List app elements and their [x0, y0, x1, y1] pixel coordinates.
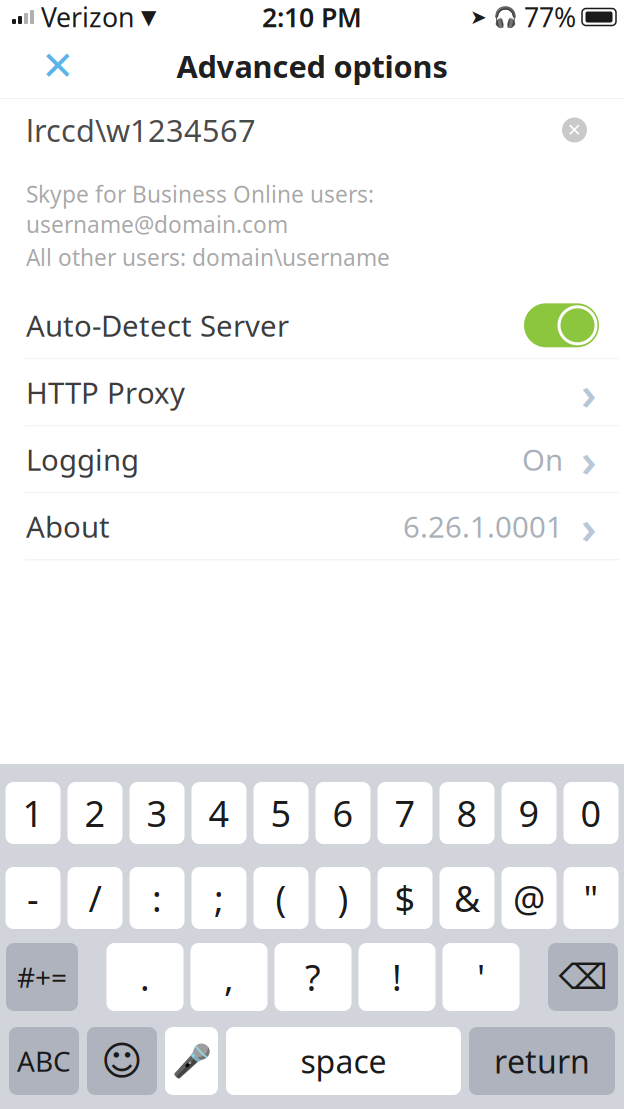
button[interactable]: return: [469, 1027, 615, 1095]
button[interactable]: lrccd\w1234567: [0, 99, 624, 161]
staticText: ?: [305, 953, 321, 1001]
button[interactable]: space: [226, 1027, 461, 1095]
button[interactable]: &: [439, 867, 494, 929]
staticText: ✕: [41, 43, 75, 89]
button[interactable]: 7: [377, 782, 432, 844]
button[interactable]: Emoji: [87, 1027, 157, 1095]
button[interactable]: :: [129, 867, 184, 929]
staticText: #+=: [17, 958, 67, 996]
staticText: About: [26, 507, 110, 546]
staticText: 7: [394, 789, 415, 837]
staticText: ": [583, 874, 598, 922]
button[interactable]: -: [5, 867, 60, 929]
button[interactable]: About: [0, 493, 624, 559]
button[interactable]: 5: [253, 782, 308, 844]
button[interactable]: Auto-Detect Server: [0, 292, 624, 358]
staticText: All other users: domain\username: [26, 242, 390, 272]
staticText: $: [394, 874, 415, 922]
button[interactable]: (: [253, 867, 308, 929]
staticText: 77%: [524, 0, 576, 35]
button[interactable]: HTTP Proxy: [0, 359, 624, 425]
staticText: Skype for Business Online users: usernam…: [26, 179, 374, 239]
staticText: ): [337, 874, 348, 922]
staticText: Logging: [26, 440, 139, 479]
button[interactable]: Dictation: [165, 1027, 218, 1095]
staticText: ➤: [470, 6, 487, 28]
button[interactable]: ?: [274, 943, 351, 1011]
button[interactable]: ,: [190, 943, 267, 1011]
staticText: 5: [270, 789, 291, 837]
button[interactable]: $: [377, 867, 432, 929]
staticText: space: [300, 1040, 386, 1082]
button[interactable]: 3: [129, 782, 184, 844]
button[interactable]: 0: [563, 782, 618, 844]
staticText: ;: [214, 874, 224, 922]
button[interactable]: ;: [191, 867, 246, 929]
staticText: ›: [581, 496, 597, 556]
staticText: Advanced options: [176, 46, 447, 86]
button[interactable]: Close: [26, 38, 90, 94]
staticText: lrccd\w1234567: [26, 110, 256, 150]
button[interactable]: 8: [439, 782, 494, 844]
button[interactable]: Delete: [548, 943, 618, 1011]
button[interactable]: 9: [501, 782, 556, 844]
staticText: 8: [456, 789, 477, 837]
staticText: !: [392, 953, 402, 1001]
staticText: 🎧: [493, 6, 518, 28]
button[interactable]: !: [358, 943, 435, 1011]
button[interactable]: @: [501, 867, 556, 929]
staticText: 2: [84, 789, 105, 837]
staticText: /: [88, 874, 101, 922]
staticText: ✕: [567, 120, 582, 140]
button[interactable]: /: [67, 867, 122, 929]
button[interactable]: .: [106, 943, 183, 1011]
staticText: Auto-Detect Server: [26, 306, 289, 345]
staticText: ›: [581, 362, 597, 422]
staticText: :: [152, 874, 162, 922]
staticText: 1: [22, 789, 43, 837]
button[interactable]: ": [563, 867, 618, 929]
staticText: ': [477, 953, 485, 1001]
button[interactable]: 6: [315, 782, 370, 844]
staticText: 6.26.1.0001: [403, 507, 563, 546]
staticText: Verizon: [41, 0, 134, 35]
button[interactable]: ): [315, 867, 370, 929]
staticText: 9: [518, 789, 539, 837]
staticText: .: [140, 953, 150, 1001]
staticText: 4: [208, 789, 229, 837]
button[interactable]: 1: [5, 782, 60, 844]
staticText: On: [522, 440, 563, 479]
button[interactable]: 2: [67, 782, 122, 844]
staticText: ⌫: [558, 957, 607, 997]
staticText: 0: [580, 789, 601, 837]
staticText: ABC: [17, 1042, 71, 1080]
staticText: 3: [146, 789, 167, 837]
staticText: ▼: [141, 6, 156, 28]
staticText: ›: [581, 429, 597, 489]
staticText: return: [494, 1040, 590, 1082]
staticText: -: [27, 874, 39, 922]
staticText: HTTP Proxy: [26, 373, 185, 412]
button[interactable]: ': [442, 943, 519, 1011]
button[interactable]: 4: [191, 782, 246, 844]
staticText: 6: [332, 789, 353, 837]
staticText: @: [513, 874, 545, 922]
staticText: ,: [224, 953, 234, 1001]
staticText: 2:10 PM: [262, 0, 362, 35]
button[interactable]: Logging: [0, 426, 624, 492]
staticText: 🎤: [171, 1043, 211, 1079]
button[interactable]: ABC: [9, 1027, 79, 1095]
staticText: ☺: [101, 1038, 143, 1084]
button[interactable]: #+=: [6, 943, 78, 1011]
staticText: (: [275, 874, 286, 922]
staticText: &: [454, 874, 480, 922]
